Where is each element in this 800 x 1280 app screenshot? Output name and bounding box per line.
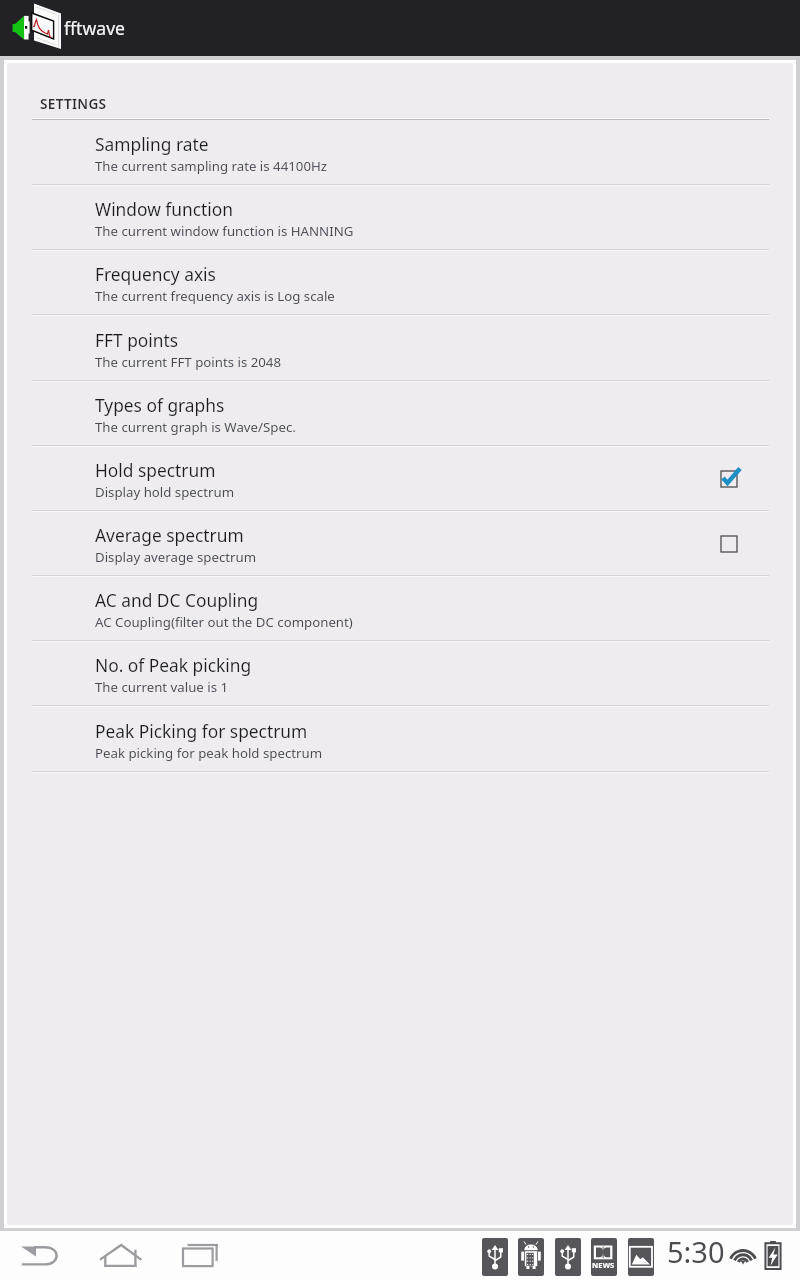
other: USB connected xyxy=(555,1238,581,1276)
staticText: Hold spectrum xyxy=(95,458,216,482)
other: Battery charging xyxy=(764,1241,782,1269)
button[interactable]: No. of Peak picking xyxy=(7,642,793,705)
button[interactable]: Hold spectrum xyxy=(7,447,793,510)
button[interactable]: Frequency axis xyxy=(7,251,793,314)
staticText: Display average spectrum xyxy=(95,548,257,566)
other: USB debugging connected xyxy=(518,1238,544,1276)
other: News xyxy=(591,1238,617,1276)
button[interactable]: Recent apps xyxy=(170,1235,228,1277)
staticText: AC Coupling(filter out the DC component) xyxy=(95,613,353,631)
staticText: Peak picking for peak hold spectrum xyxy=(95,744,323,762)
staticText: The current FFT points is 2048 xyxy=(95,353,282,371)
staticText: Frequency axis xyxy=(95,262,216,286)
staticText: Display hold spectrum xyxy=(95,483,235,501)
staticText: AC and DC Coupling xyxy=(95,588,259,612)
button[interactable]: Types of graphs xyxy=(7,382,793,445)
button[interactable]: Checked xyxy=(710,459,750,499)
staticText: The current frequency axis is Log scale xyxy=(95,287,335,305)
button[interactable]: Window function xyxy=(7,186,793,249)
staticText: SETTINGS xyxy=(40,94,107,113)
other: USB connected xyxy=(482,1238,508,1276)
button[interactable]: Unchecked xyxy=(710,524,750,564)
staticText: The current value is 1 xyxy=(95,678,229,696)
staticText: FFT points xyxy=(95,328,179,352)
staticText: fftwave xyxy=(64,16,126,40)
staticText: Peak Picking for spectrum xyxy=(95,719,308,743)
button[interactable]: FFT points xyxy=(7,316,793,380)
button[interactable]: Back xyxy=(10,1235,68,1277)
staticText: NEWS xyxy=(592,1260,615,1270)
button[interactable]: Peak Picking for spectrum xyxy=(7,707,793,771)
button[interactable]: Average spectrum xyxy=(7,512,793,575)
staticText: Sampling rate xyxy=(95,132,209,156)
staticText: The current graph is Wave/Spec. xyxy=(95,418,296,436)
staticText: Types of graphs xyxy=(95,393,225,417)
staticText: The current window function is HANNING xyxy=(95,222,354,240)
staticText: No. of Peak picking xyxy=(95,653,252,677)
staticText: The current sampling rate is 44100Hz xyxy=(95,157,328,175)
other: Wi-Fi signal xyxy=(729,1242,758,1266)
button[interactable]: AC and DC Coupling xyxy=(7,577,793,640)
button[interactable]: Sampling rate xyxy=(7,120,793,184)
staticText: Average spectrum xyxy=(95,523,244,547)
staticText: 5:30 xyxy=(667,1232,725,1271)
other: Screenshot captured xyxy=(628,1238,654,1276)
button[interactable]: Home xyxy=(90,1235,148,1277)
staticText: Window function xyxy=(95,197,233,221)
